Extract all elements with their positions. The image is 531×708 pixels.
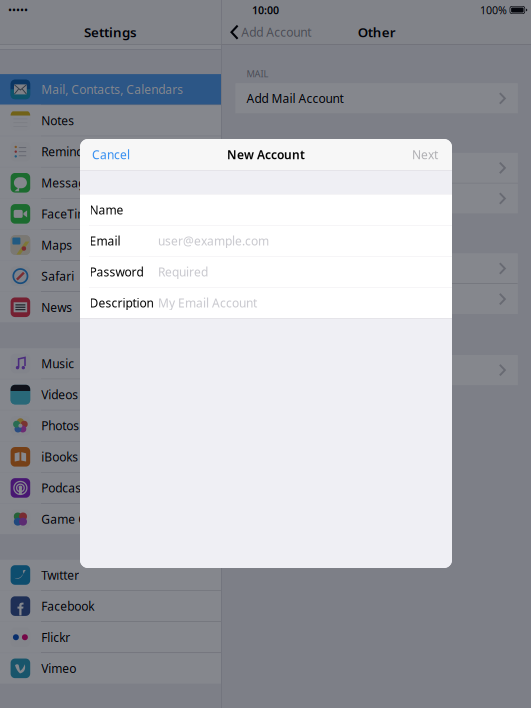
button[interactable]: Photos (0, 410, 221, 441)
staticText: Photos (41, 418, 79, 434)
button[interactable]: Safari (0, 261, 221, 291)
staticText: Add LDAP Account (247, 160, 350, 176)
staticText: Twitter (41, 567, 79, 583)
button[interactable]: Add LDAP Account (236, 153, 518, 183)
staticText: Mail, Contacts, Calendars (41, 81, 183, 97)
button[interactable]: Facebook (0, 591, 221, 621)
button[interactable]: Game Center (0, 504, 221, 534)
button[interactable]: Reminders (0, 136, 221, 167)
staticText: New Account (227, 146, 305, 162)
button[interactable]: Flickr (0, 622, 221, 652)
staticText: Flickr (41, 629, 70, 645)
button[interactable]: Maps (0, 230, 221, 260)
button[interactable]: Twitter (0, 560, 221, 590)
staticText: Description (89, 295, 153, 311)
button[interactable]: iBooks (0, 441, 221, 472)
button[interactable]: Notes (0, 105, 221, 136)
staticText: Add CardDAV Account (247, 190, 370, 206)
button[interactable]: FaceTime (0, 199, 221, 229)
staticText: ••••• (8, 3, 28, 17)
staticText: News (41, 299, 72, 315)
button[interactable]: Music (0, 348, 221, 379)
button[interactable]: Add CardDAV Account (236, 183, 518, 213)
staticText: 10:00 (252, 3, 279, 17)
staticText: Notes (41, 113, 74, 128)
staticText: Name (89, 202, 123, 218)
staticText: user@example.com (158, 233, 269, 249)
button[interactable]: Add Account (222, 20, 311, 44)
staticText: Maps (41, 237, 72, 253)
button[interactable]: Podcasts (0, 473, 221, 503)
staticText: Reminders (41, 144, 101, 160)
staticText: FaceTime (41, 206, 95, 222)
staticText: Music (41, 355, 74, 371)
staticText: Game Center (41, 511, 116, 527)
button[interactable]: Add CalDAV Account (236, 253, 518, 283)
staticText: Next (412, 146, 438, 162)
staticText: Cancel (92, 146, 130, 162)
staticText: MAIL (247, 67, 269, 80)
staticText: Add Account (241, 24, 311, 40)
staticText: Email (89, 233, 120, 249)
button[interactable]: Add Subscribed Calendar (236, 284, 518, 314)
button[interactable]: Cancel (80, 140, 130, 168)
staticText: Required (158, 264, 208, 280)
button[interactable]: Videos (0, 379, 221, 410)
staticText: iBooks (41, 449, 78, 465)
button[interactable]: Vimeo (0, 653, 221, 684)
staticText: Podcasts (41, 480, 91, 496)
staticText: Add Subscribed Calendar (247, 291, 388, 307)
staticText: Messages (41, 175, 98, 191)
staticText: Facebook (41, 598, 94, 614)
staticText: My Email Account (158, 295, 257, 311)
staticText: Password (89, 264, 143, 280)
button[interactable]: Messages (0, 167, 221, 198)
staticText: Add Mail Account (247, 90, 344, 106)
staticText: Safari (41, 268, 74, 284)
staticText: Vimeo (41, 660, 76, 676)
button[interactable]: Next (412, 140, 452, 168)
staticText: Settings (84, 23, 137, 41)
button[interactable]: Mail, Contacts, Calendars (0, 74, 221, 105)
button[interactable]: Add Mail Account (236, 83, 518, 113)
staticText: 100% (480, 3, 507, 17)
button[interactable]: News (0, 292, 221, 322)
staticText: Videos (41, 387, 78, 402)
staticText: Other (358, 23, 396, 41)
button[interactable]: Add macOS Server Account (236, 355, 518, 385)
